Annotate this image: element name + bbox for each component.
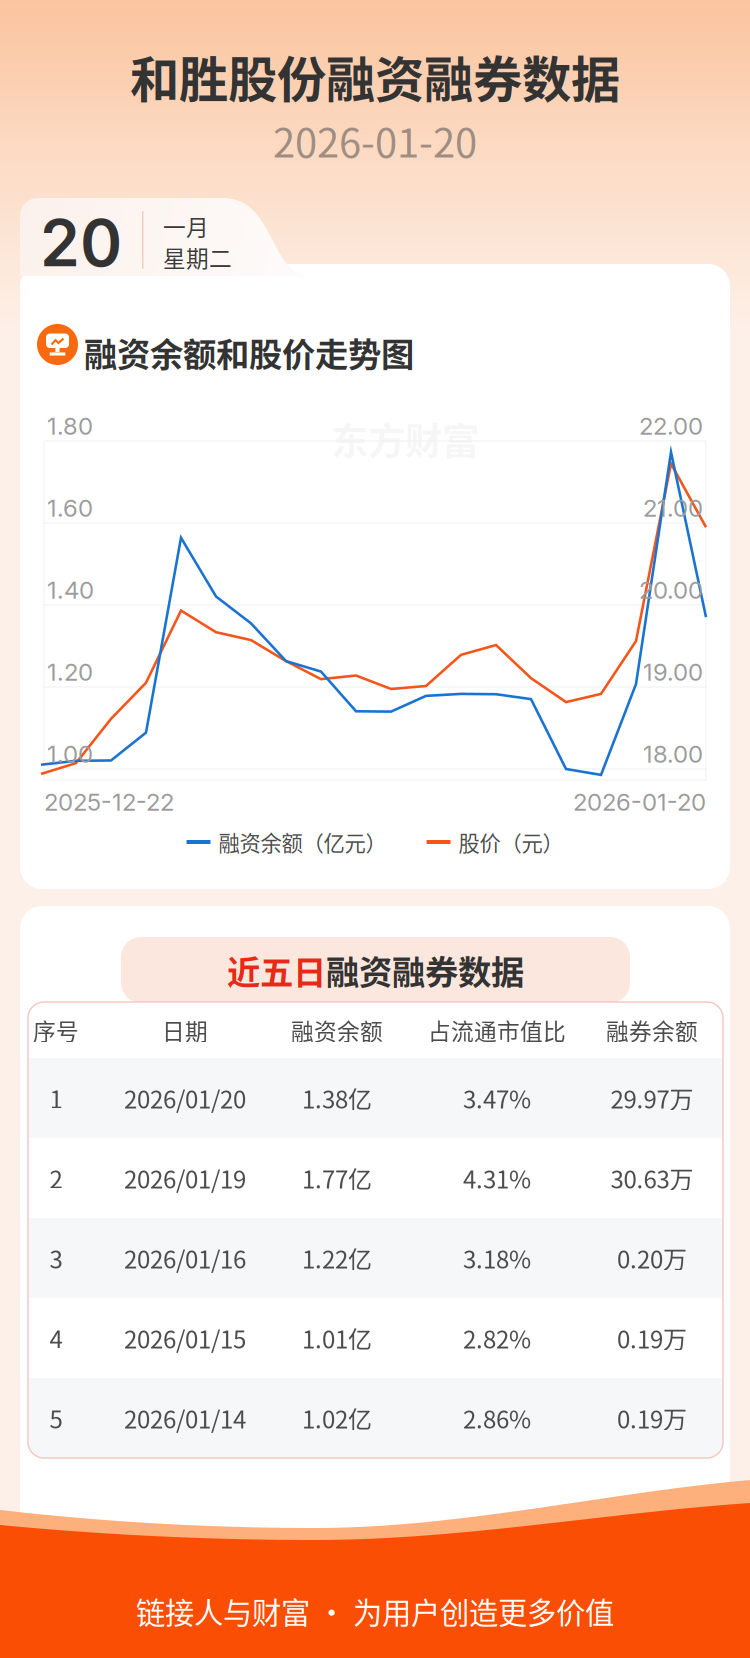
staticText: 1.02亿 [302,1401,372,1435]
staticText: 2 [49,1161,62,1195]
staticText: 2026/01/15 [124,1321,246,1355]
staticText: 20 [40,204,122,282]
staticText: 2026/01/20 [124,1081,246,1115]
staticText: 2025-12-22 [44,787,174,816]
staticText: 0.19万 [617,1321,687,1355]
staticText: 2026/01/16 [124,1241,246,1275]
staticText: 1.01亿 [302,1321,372,1355]
staticText: 20.00 [639,575,703,604]
staticText: 融资余额（亿元） [218,827,386,857]
staticText: 序号 [33,1014,79,1046]
staticText: 2026-01-20 [273,111,477,169]
staticText: 1.20 [47,657,93,686]
staticText: 日期 [162,1014,208,1046]
staticText: 2026-01-20 [573,787,706,816]
staticText: 1.22亿 [302,1241,372,1275]
staticText: 1.80 [47,411,93,440]
staticText: 占流通市值比 [428,1014,566,1046]
staticText: 4 [49,1321,62,1355]
staticText: 股价（元） [458,827,563,857]
staticText: 2026/01/14 [124,1401,246,1435]
staticText: 链接人与财富 · 为用户创造更多价值 [136,1590,614,1632]
staticText: 2.86% [463,1401,531,1435]
staticText: 融资余额和股价走势图 [84,328,414,376]
staticText: 3 [49,1241,62,1275]
staticText: 1.38亿 [302,1081,372,1115]
staticText: 0.19万 [617,1401,687,1435]
staticText: 一月 [163,210,209,242]
staticText: 近五日 [227,946,326,994]
staticText: 星期二 [163,241,232,273]
staticText: 21.00 [643,493,703,522]
staticText: 2.82% [463,1321,531,1355]
staticText: 1.00 [47,739,93,768]
staticText: 1 [49,1081,62,1115]
staticText: 3.18% [463,1241,531,1275]
staticText: 3.47% [463,1081,531,1115]
staticText: 东方财富 [331,412,479,466]
staticText: 1.77亿 [302,1161,372,1195]
staticText: 19.00 [643,657,703,686]
staticText: 4.31% [463,1161,531,1195]
staticText: 5 [49,1401,62,1435]
staticText: 融券余额 [606,1014,698,1046]
staticText: 0.20万 [617,1241,687,1275]
staticText: 18.00 [643,739,703,768]
staticText: 融资余额 [291,1014,383,1046]
staticText: 22.00 [639,411,703,440]
staticText: 1.40 [47,575,94,604]
staticText: 2026/01/19 [124,1161,246,1195]
staticText: 和胜股份融资融券数据 [130,40,620,112]
staticText: 1.60 [47,493,93,522]
staticText: 30.63万 [610,1161,693,1195]
staticText: 29.97万 [610,1081,693,1115]
staticText: 融资融券数据 [326,946,524,994]
